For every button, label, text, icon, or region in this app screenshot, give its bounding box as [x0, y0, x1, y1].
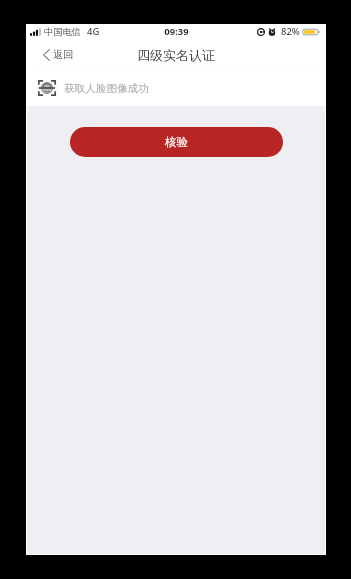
staticText: 返回 [53, 48, 74, 61]
button[interactable]: Face scan [27, 70, 325, 106]
button[interactable]: 核验 [70, 127, 283, 157]
staticText: 09:39 [164, 25, 189, 38]
staticText: 4G [87, 25, 100, 38]
staticText: 82% [281, 25, 300, 38]
staticText: 四级实名认证 [137, 47, 215, 63]
staticText: 核验 [165, 135, 188, 149]
staticText: 获取人脸图像成功 [64, 82, 149, 95]
staticText: 中国电信 [44, 26, 81, 38]
other: Face scan [38, 80, 56, 96]
button[interactable]: Back [43, 48, 74, 61]
